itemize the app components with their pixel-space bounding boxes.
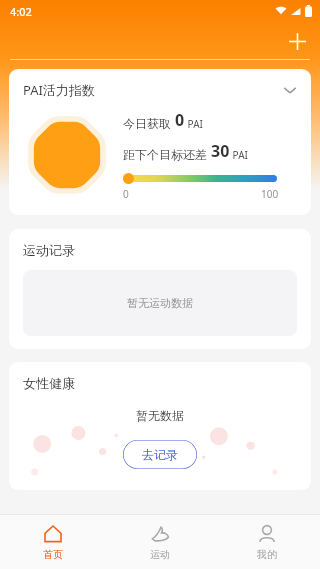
staticText: 我的 [257,548,277,561]
button[interactable]: PAI活力指数 [23,81,299,99]
staticText: 首页 [43,548,63,561]
button[interactable]: 去记录 [123,440,197,469]
staticText: PAI [185,117,203,131]
staticText: PAI [230,148,248,162]
staticText: 去记录 [142,447,178,462]
staticText: 100 [261,187,279,201]
button[interactable]: 我的 [213,515,320,569]
staticText: 30 [211,140,230,162]
staticText: 距下个目标还差 [123,146,211,162]
staticText: 运动记录 [23,242,75,258]
other: Expand [281,81,299,99]
staticText: 女性健康 [23,375,75,391]
staticText: 运动 [150,548,170,561]
staticText: PAI活力指数 [23,81,95,99]
button[interactable]: 首页 [0,515,106,569]
button[interactable]: Add [282,26,312,56]
staticText: 暂无数据 [136,408,184,423]
staticText: 4:02 [10,4,32,19]
staticText: 0 [175,109,185,131]
button[interactable]: 运动 [106,515,213,569]
staticText: 0 [123,187,129,201]
staticText: 暂无运动数据 [127,296,193,310]
staticText: 今日获取 [123,115,175,131]
button[interactable]: 暂无运动数据 [23,270,297,336]
